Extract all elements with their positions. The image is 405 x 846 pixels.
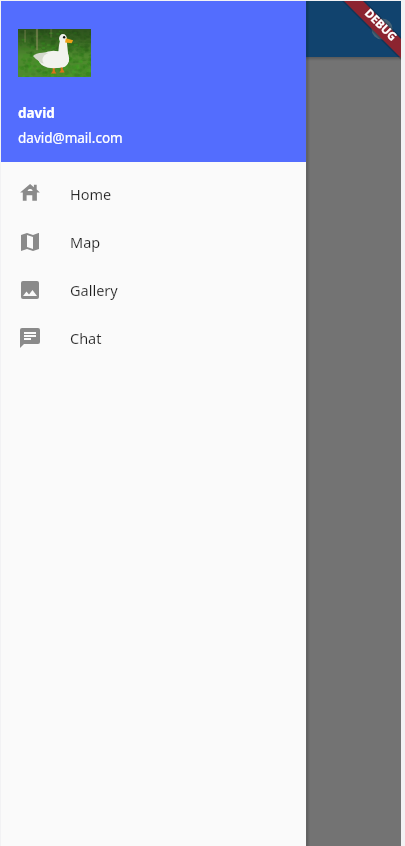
button[interactable]: Chat <box>1 314 306 362</box>
staticText: david@mail.com <box>18 129 123 147</box>
staticText: david <box>18 104 55 122</box>
staticText: Map <box>70 232 101 252</box>
staticText: DEBUG <box>361 5 401 45</box>
staticText: Chat <box>70 328 102 348</box>
button[interactable]: Gallery <box>1 266 306 314</box>
button[interactable]: Map <box>1 218 306 266</box>
button[interactable]: Home <box>1 170 306 218</box>
staticText: Gallery <box>70 280 118 300</box>
staticText: Home <box>70 184 112 204</box>
